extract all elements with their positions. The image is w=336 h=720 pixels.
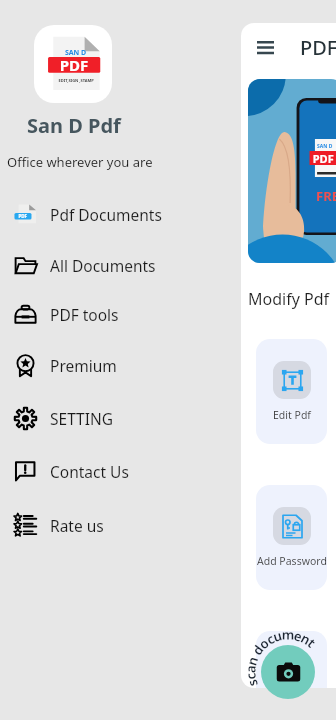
staticText: Modify Pdf [248,288,330,310]
button[interactable]: All Documents [0,239,241,291]
button[interactable]: Rate us [0,499,241,551]
button[interactable]: Edit Pdf [256,339,327,444]
button[interactable]: Open navigation menu [252,34,278,60]
staticText: Edit Pdf [273,408,311,422]
button[interactable]: Contact Us [0,445,241,497]
staticText: San D Pdf [27,112,121,139]
button[interactable]: Scan document [261,645,315,699]
staticText: Contact Us [50,461,129,482]
staticText: Pdf Documents [50,204,162,225]
button[interactable]: Add Password [256,485,327,590]
button[interactable]: Premium [0,339,241,391]
staticText: SETTING [50,408,113,429]
button[interactable]: PDF tools [0,288,241,340]
staticText: Rate us [50,515,104,536]
staticText: Add Password [257,554,327,568]
staticText: Office wherever you are [7,153,153,171]
staticText: All Documents [50,255,156,276]
staticText: Premium [50,355,117,376]
button[interactable]: Pdf Documents [0,188,241,240]
staticText: PDF tools [50,304,119,325]
button[interactable]: SETTING [0,392,241,444]
staticText: PDF [300,34,336,61]
